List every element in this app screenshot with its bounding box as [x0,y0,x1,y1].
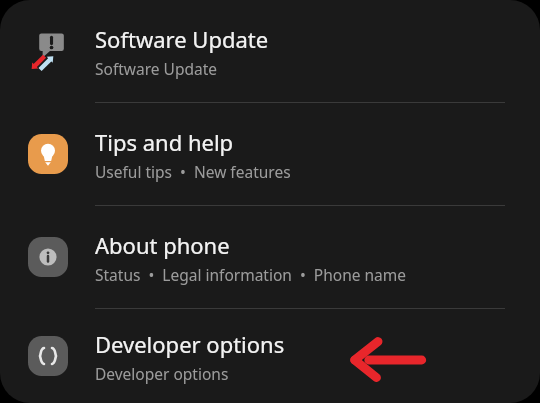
button[interactable]: Developer options [0,309,540,403]
staticText: Status • Legal information • Phone name [95,264,407,285]
staticText: Software Update [95,58,217,79]
staticText: Software Update [95,24,269,54]
staticText: Tips and help [95,127,234,157]
staticText: Useful tips • New features [95,161,291,182]
button[interactable]: Software Update [0,0,540,102]
staticText: Developer options [95,329,285,359]
staticText: Developer options [95,363,229,384]
button[interactable]: Tips and help [0,103,540,205]
button[interactable]: About phone [0,206,540,308]
staticText: About phone [95,230,230,260]
other: Annotation arrow [350,338,428,382]
